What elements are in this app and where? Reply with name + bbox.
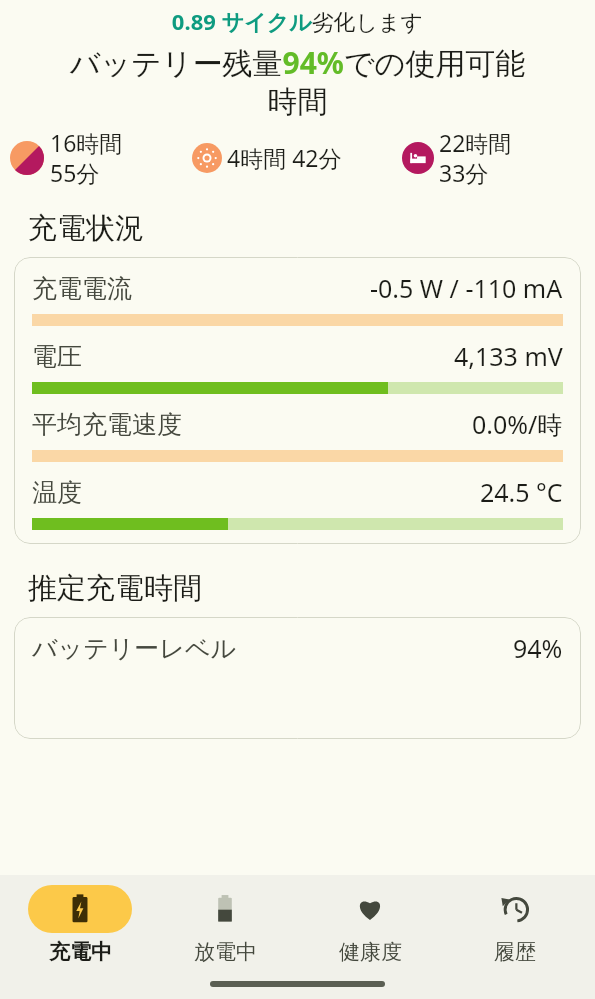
staticText: 22時間 33分 bbox=[439, 127, 585, 188]
staticText: 電圧 bbox=[32, 341, 82, 372]
other: 健康度 bbox=[338, 885, 402, 933]
staticText: 平均充電速度 bbox=[32, 409, 182, 440]
staticText: 充電中 bbox=[49, 939, 112, 965]
staticText: 放電中 bbox=[194, 939, 257, 965]
button[interactable]: 充電中 bbox=[15, 885, 145, 965]
button[interactable]: 履歴 bbox=[450, 885, 580, 965]
staticText: 0.0%/時 bbox=[472, 407, 563, 441]
other: 放電中 bbox=[193, 885, 257, 933]
staticText: 温度 bbox=[32, 477, 82, 508]
staticText: 時間 bbox=[4, 83, 591, 121]
staticText: 充電電流 bbox=[32, 273, 132, 304]
staticText: 4時間 42分 bbox=[227, 142, 342, 173]
button[interactable]: 放電中 bbox=[160, 885, 290, 965]
button[interactable]: 健康度 bbox=[305, 885, 435, 965]
staticText: -0.5 W / -110 mA bbox=[370, 271, 563, 305]
other: 履歴 bbox=[483, 885, 547, 933]
staticText: 履歴 bbox=[494, 939, 536, 965]
staticText: バッテリー残量94%での使用可能 bbox=[4, 42, 591, 83]
staticText: 健康度 bbox=[339, 939, 402, 965]
staticText: 推定充電時間 bbox=[28, 570, 202, 607]
staticText: バッテリーレベル bbox=[32, 633, 237, 664]
staticText: 16時間 55分 bbox=[50, 127, 123, 188]
staticText: 24.5 °C bbox=[480, 475, 563, 509]
staticText: 4,133 mV bbox=[454, 339, 563, 373]
staticText: 0.89 サイクル劣化します bbox=[4, 6, 591, 36]
staticText: 充電状況 bbox=[28, 210, 144, 247]
other: 充電中 bbox=[28, 885, 132, 933]
staticText: 94% bbox=[513, 631, 563, 665]
